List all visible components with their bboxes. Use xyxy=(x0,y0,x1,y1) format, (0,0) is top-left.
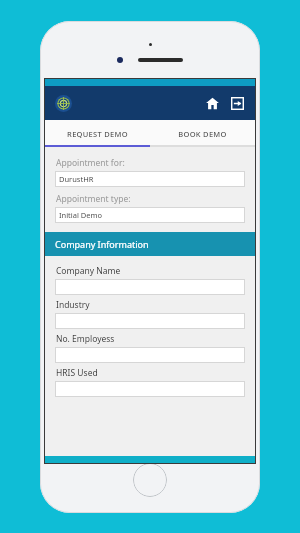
staticText: HRIS Used xyxy=(56,367,98,379)
staticText: REQUEST DEMO xyxy=(67,129,128,139)
button[interactable]: BOOK DEMO xyxy=(150,120,255,147)
button[interactable]: Logout xyxy=(227,93,247,113)
staticText: BOOK DEMO xyxy=(178,129,227,139)
staticText: No. Employess xyxy=(56,333,115,345)
button[interactable] xyxy=(55,313,245,329)
staticText: Company Name xyxy=(56,265,121,277)
staticText: DurustHR xyxy=(59,174,94,184)
button[interactable]: Initial Demo xyxy=(55,207,245,223)
button[interactable]: Home button xyxy=(133,463,167,497)
staticText: Appointment type: xyxy=(56,193,131,205)
button[interactable]: REQUEST DEMO xyxy=(45,120,150,147)
button[interactable] xyxy=(55,279,245,295)
button[interactable] xyxy=(55,347,245,363)
staticText: Industry xyxy=(56,299,90,311)
button[interactable]: Home xyxy=(202,93,222,113)
staticText: Appointment for: xyxy=(56,157,125,169)
button[interactable] xyxy=(55,381,245,397)
staticText: Initial Demo xyxy=(59,210,103,220)
button[interactable]: DurustHR xyxy=(55,171,245,187)
staticText: Company Information xyxy=(55,238,149,250)
